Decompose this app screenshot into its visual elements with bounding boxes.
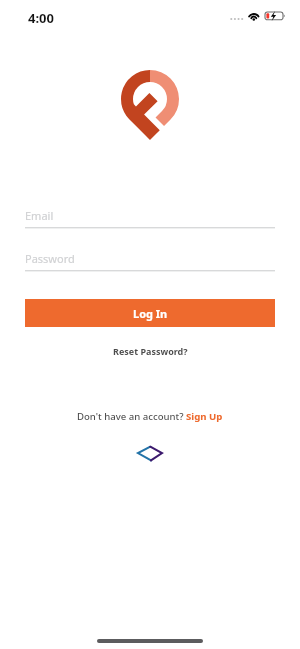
staticText: Reset Password?	[113, 345, 188, 357]
staticText: Don't have an account? Sign Up	[77, 410, 223, 423]
staticText: 4:00	[28, 9, 54, 27]
button[interactable]: Email	[25, 208, 275, 234]
staticText: Log In	[133, 306, 168, 321]
button[interactable]: Log In	[25, 299, 275, 327]
button[interactable]: Don't have an account? Sign Up	[73, 408, 227, 425]
staticText: Password	[25, 251, 75, 266]
staticText: Email	[25, 208, 54, 223]
button[interactable]: Reset Password?	[107, 343, 194, 359]
button[interactable]: Password	[25, 251, 275, 277]
